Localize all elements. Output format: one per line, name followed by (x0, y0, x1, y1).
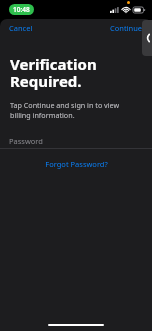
button[interactable]: Password (0, 134, 152, 148)
staticText: Cancel (9, 23, 33, 33)
button[interactable]: Next card (142, 20, 152, 56)
staticText: 10:48 (13, 5, 30, 14)
staticText: Forgot Password? (45, 159, 108, 169)
staticText: Tap Continue and sign in to view billing… (10, 100, 120, 120)
button[interactable]: Continue (101, 20, 152, 36)
staticText: Password (9, 136, 43, 146)
button[interactable]: Cancel (0, 20, 42, 36)
staticText: Continue (110, 23, 143, 33)
button[interactable]: Forgot Password? (39, 157, 114, 171)
staticText: Verification Required. (10, 54, 97, 92)
